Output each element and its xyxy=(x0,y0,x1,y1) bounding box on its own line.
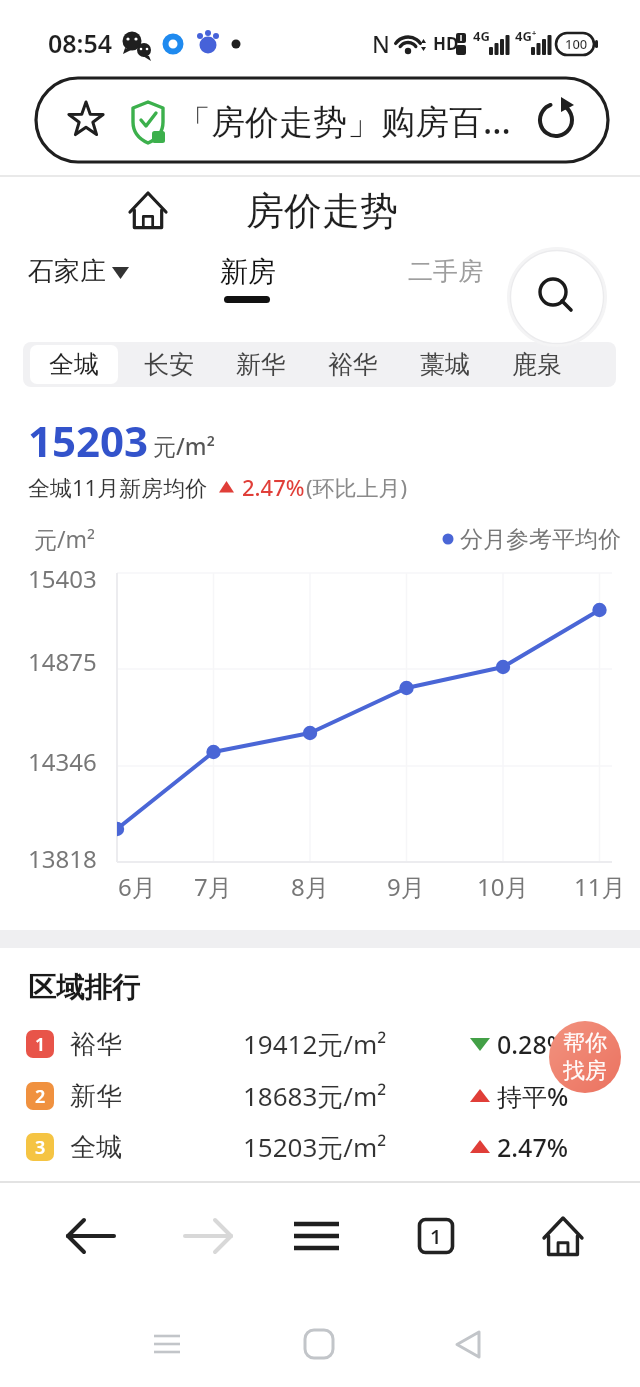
button[interactable] xyxy=(510,250,604,344)
staticText: 2 xyxy=(35,1084,46,1109)
staticText: 7月 xyxy=(194,870,232,903)
staticText: 长安 xyxy=(144,349,194,380)
staticText: 15203 xyxy=(28,412,149,469)
staticText: 14875 xyxy=(28,645,97,678)
button[interactable] xyxy=(285,1208,347,1264)
staticText: 13818 xyxy=(28,842,97,875)
staticText: 区域排行 xyxy=(28,970,140,1005)
staticText: 分月参考平均价 xyxy=(460,525,621,554)
button[interactable] xyxy=(405,1208,467,1264)
staticText: 15203元/m² xyxy=(243,1129,387,1165)
staticText: 全城 xyxy=(70,1131,122,1164)
staticText: 9月 xyxy=(387,870,425,903)
staticText: 新房 xyxy=(220,254,276,289)
staticText: 持平% xyxy=(497,1079,569,1113)
staticText: 元/m² xyxy=(34,523,96,554)
button[interactable] xyxy=(124,187,172,235)
staticText: 4G xyxy=(473,27,490,45)
staticText: 元/m² xyxy=(153,430,215,461)
staticText: 19412元/m² xyxy=(243,1026,387,1062)
staticText: 藁城 xyxy=(420,349,470,380)
button[interactable] xyxy=(62,96,110,144)
button[interactable]: 二手房 xyxy=(408,247,483,295)
staticText: 帮你 xyxy=(563,1029,607,1057)
button[interactable] xyxy=(30,345,118,384)
staticText: (环比上月) xyxy=(306,472,408,502)
staticText: N xyxy=(372,28,390,59)
button[interactable]: 石家庄 xyxy=(28,247,106,295)
staticText: 100 xyxy=(565,35,588,53)
button[interactable] xyxy=(442,1318,496,1370)
staticText: 0.28% xyxy=(497,1027,569,1061)
staticText: 15403 xyxy=(28,562,97,595)
button[interactable]: 鹿泉 xyxy=(497,340,577,388)
staticText: 石家庄 xyxy=(28,255,106,288)
button[interactable] xyxy=(20,1123,620,1171)
staticText: 08:54 xyxy=(48,26,113,60)
staticText: 裕华 xyxy=(328,349,378,380)
staticText: 18683元/m² xyxy=(243,1078,387,1114)
staticText: 11月 xyxy=(574,870,626,903)
staticText: 1 xyxy=(35,1032,46,1057)
staticText: 房价走势 xyxy=(246,187,398,235)
staticText: 14346 xyxy=(28,745,97,778)
staticText: 全城11月新房均价 xyxy=(28,472,208,502)
staticText: 二手房 xyxy=(408,256,483,287)
button[interactable] xyxy=(532,1208,594,1264)
staticText: 2.47% xyxy=(242,472,305,502)
staticText: 新华 xyxy=(70,1080,122,1113)
button[interactable] xyxy=(36,78,608,162)
button[interactable] xyxy=(60,1208,122,1264)
staticText: 2.47% xyxy=(497,1130,569,1164)
staticText: 裕华 xyxy=(70,1028,122,1061)
button[interactable] xyxy=(532,96,580,144)
button[interactable] xyxy=(177,1208,239,1264)
button[interactable]: 新华 xyxy=(221,340,301,388)
staticText: HD xyxy=(433,32,459,55)
button[interactable]: 长安 xyxy=(129,340,209,388)
staticText: 4G⁺ xyxy=(515,27,537,45)
button[interactable] xyxy=(20,1072,620,1120)
button[interactable] xyxy=(292,1318,346,1370)
button[interactable] xyxy=(124,96,172,144)
staticText: 3 xyxy=(35,1135,46,1160)
staticText: 全城 xyxy=(49,349,99,380)
staticText: 6月 xyxy=(118,870,156,903)
button[interactable]: 新房 xyxy=(220,247,276,295)
button[interactable]: 裕华 xyxy=(313,340,393,388)
button[interactable]: 藁城 xyxy=(405,340,485,388)
staticText: 鹿泉 xyxy=(512,349,562,380)
staticText: 新华 xyxy=(236,349,286,380)
button[interactable] xyxy=(20,1020,620,1068)
staticText: 「房价走势」购房百... xyxy=(177,98,511,144)
staticText: 找房 xyxy=(563,1057,607,1085)
button[interactable]: 帮你 xyxy=(549,1021,621,1093)
staticText: 10月 xyxy=(477,870,529,903)
staticText: 1 xyxy=(430,1223,442,1250)
staticText: 8月 xyxy=(291,870,329,903)
button[interactable] xyxy=(140,1318,194,1370)
